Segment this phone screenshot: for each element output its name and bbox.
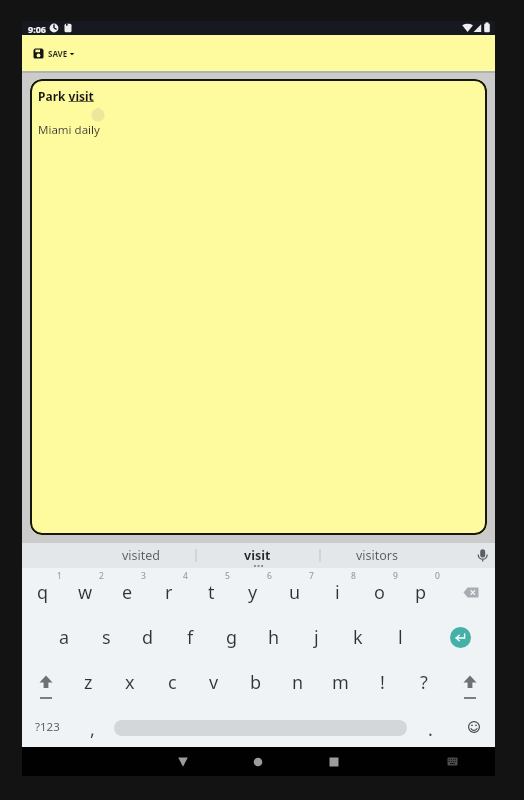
staticText: Park visit xyxy=(38,88,94,104)
button[interactable] xyxy=(450,627,471,648)
staticText: s xyxy=(102,625,111,650)
button[interactable]: h xyxy=(253,621,295,653)
button[interactable] xyxy=(244,747,272,776)
button[interactable]: a xyxy=(43,621,85,653)
button[interactable]: Park visit xyxy=(30,79,487,535)
staticText: a xyxy=(59,625,70,650)
button[interactable]: f xyxy=(169,621,211,653)
button[interactable]: ? xyxy=(403,666,445,698)
staticText: visited xyxy=(122,547,161,564)
staticText: q xyxy=(37,580,49,605)
staticText: 0 xyxy=(435,570,440,582)
staticText: x xyxy=(125,670,135,695)
staticText: 7 xyxy=(309,570,314,582)
button[interactable]: , xyxy=(71,713,113,745)
staticText: j xyxy=(314,625,319,650)
staticText: o xyxy=(374,580,385,605)
button[interactable] xyxy=(446,576,495,608)
button[interactable] xyxy=(29,666,63,702)
button[interactable]: t xyxy=(190,576,232,608)
staticText: 1 xyxy=(57,570,62,582)
button[interactable]: z xyxy=(67,666,109,698)
staticText: m xyxy=(332,670,349,695)
staticText: g xyxy=(226,625,238,650)
button[interactable]: ?123 xyxy=(22,711,72,743)
button[interactable]: v xyxy=(193,666,235,698)
button[interactable]: SAVE xyxy=(33,48,75,59)
button[interactable]: c xyxy=(151,666,193,698)
staticText: 5 xyxy=(225,570,230,582)
staticText: b xyxy=(250,670,262,695)
staticText: 8 xyxy=(351,570,356,582)
staticText: , xyxy=(90,717,95,742)
staticText: 3 xyxy=(141,570,146,582)
staticText: f xyxy=(187,625,194,650)
staticText: v xyxy=(209,670,219,695)
staticText: ? xyxy=(420,670,428,695)
staticText: visit xyxy=(244,547,271,564)
staticText: r xyxy=(165,580,173,605)
staticText: Miami daily xyxy=(38,122,100,138)
staticText: h xyxy=(268,625,280,650)
staticText: w xyxy=(78,580,93,605)
button[interactable]: p xyxy=(400,576,442,608)
staticText: c xyxy=(168,670,177,695)
button[interactable]: o xyxy=(358,576,400,608)
staticText: d xyxy=(142,625,154,650)
staticText: u xyxy=(289,580,301,605)
button[interactable]: b xyxy=(235,666,277,698)
staticText: ! xyxy=(380,670,385,695)
button[interactable]: u xyxy=(274,576,316,608)
staticText: 4 xyxy=(183,570,188,582)
staticText: p xyxy=(415,580,427,605)
button[interactable]: d xyxy=(127,621,169,653)
button[interactable]: . xyxy=(409,713,451,745)
staticText: SAVE xyxy=(48,48,68,59)
button[interactable]: ! xyxy=(361,666,403,698)
button[interactable]: w xyxy=(64,576,106,608)
button[interactable]: visit xyxy=(207,543,307,568)
staticText: y xyxy=(248,580,258,605)
button[interactable]: j xyxy=(295,621,337,653)
staticText: . xyxy=(428,717,433,742)
staticText: ?123 xyxy=(35,719,60,735)
button[interactable] xyxy=(440,747,464,776)
staticText: t xyxy=(208,580,215,605)
staticText: z xyxy=(84,670,93,695)
staticText: 2 xyxy=(99,570,104,582)
staticText: visitors xyxy=(356,547,399,564)
staticText: 9 xyxy=(393,570,398,582)
staticText: e xyxy=(122,580,133,605)
button[interactable]: visitors xyxy=(327,543,427,568)
button[interactable]: y xyxy=(232,576,274,608)
button[interactable]: k xyxy=(337,621,379,653)
button[interactable]: n xyxy=(277,666,319,698)
button[interactable] xyxy=(453,666,487,702)
button[interactable]: e xyxy=(106,576,148,608)
staticText: k xyxy=(353,625,363,650)
button[interactable]: q xyxy=(22,576,64,608)
button[interactable] xyxy=(169,747,197,776)
button[interactable]: visited xyxy=(91,543,191,568)
button[interactable] xyxy=(452,711,495,743)
staticText: i xyxy=(335,580,340,605)
staticText: 6 xyxy=(267,570,272,582)
button[interactable]: x xyxy=(109,666,151,698)
staticText: 9:06 xyxy=(28,23,46,35)
staticText: l xyxy=(398,625,403,650)
button[interactable]: s xyxy=(85,621,127,653)
button[interactable]: i xyxy=(316,576,358,608)
button[interactable]: m xyxy=(319,666,361,698)
button[interactable]: l xyxy=(379,621,421,653)
button[interactable]: g xyxy=(211,621,253,653)
button[interactable] xyxy=(320,747,348,776)
button[interactable]: r xyxy=(148,576,190,608)
staticText: n xyxy=(292,670,304,695)
